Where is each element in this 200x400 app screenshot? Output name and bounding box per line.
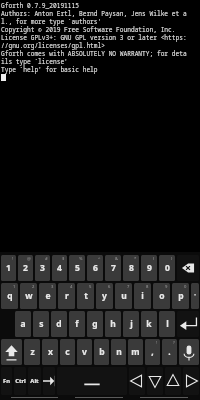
button[interactable]: v — [77, 339, 92, 365]
button[interactable]: 4 — [52, 255, 67, 281]
button[interactable]: p — [172, 283, 189, 309]
staticText: h — [110, 318, 116, 330]
staticText: ! — [156, 340, 158, 346]
staticText: License GPLv3+: GNU GPL version 3 or lat… — [1, 33, 187, 41]
button[interactable]: r — [58, 283, 75, 309]
staticText: @ — [27, 256, 31, 262]
staticText: i — [141, 290, 144, 302]
button[interactable]: Alt — [28, 367, 41, 395]
button[interactable]: 0 — [159, 255, 175, 281]
staticText: 6 — [108, 284, 111, 290]
button[interactable]: Space — [57, 367, 127, 395]
button[interactable]: h — [105, 311, 121, 337]
button[interactable]: Fn — [1, 367, 12, 395]
button[interactable]: i — [134, 283, 151, 309]
button[interactable]: e — [39, 283, 56, 309]
staticText: w — [25, 290, 33, 302]
staticText: s — [39, 318, 44, 330]
staticText: u — [121, 290, 127, 302]
staticText: z — [30, 346, 35, 358]
button[interactable]: Down — [147, 367, 163, 395]
staticText: y — [102, 290, 107, 302]
staticText: 4 — [70, 284, 73, 290]
staticText: ' — [194, 292, 196, 300]
button[interactable]: z — [24, 339, 40, 365]
button[interactable]: q — [1, 283, 18, 309]
staticText: Ctrl — [15, 377, 26, 385]
button[interactable]: f — [69, 311, 85, 337]
button[interactable]: Up — [165, 367, 181, 395]
button[interactable]: Shift — [1, 339, 22, 365]
button[interactable]: d — [51, 311, 67, 337]
staticText: q — [7, 290, 13, 302]
button[interactable]: 8 — [123, 255, 139, 281]
button[interactable]: 1 — [1, 255, 16, 281]
button[interactable]: , — [145, 339, 160, 365]
button[interactable]: a — [15, 311, 31, 337]
button[interactable]: c — [60, 339, 75, 365]
button[interactable]: n — [111, 339, 126, 365]
button[interactable]: 5 — [69, 255, 85, 281]
staticText: Copyright © 2019 Free Software Foundatio… — [1, 25, 176, 33]
staticText: ^ — [98, 256, 101, 262]
staticText: 7 — [111, 262, 116, 274]
staticText: n — [116, 346, 122, 358]
button[interactable]: s — [33, 311, 49, 337]
staticText: Authors: Anton Ertl, Bernd Paysan, Jens … — [1, 9, 187, 17]
button[interactable]: 6 — [87, 255, 103, 281]
staticText: 5 — [89, 284, 92, 290]
button[interactable]: 9 — [141, 255, 157, 281]
button[interactable]: x — [42, 339, 58, 365]
staticText: 2 — [32, 284, 35, 290]
button[interactable]: k — [141, 311, 157, 337]
staticText: o — [159, 290, 165, 302]
staticText: 8 — [146, 284, 149, 290]
button[interactable]: 2 — [18, 255, 33, 281]
button[interactable]: Left — [129, 367, 145, 395]
button[interactable]: Backspace — [177, 255, 199, 281]
button[interactable]: Ctrl — [14, 367, 26, 395]
staticText: 1 — [6, 262, 11, 274]
staticText: b — [99, 346, 105, 358]
button[interactable]: Right — [183, 367, 199, 395]
staticText: 8 — [129, 262, 134, 274]
button[interactable]: 3 — [35, 255, 50, 281]
staticText: 3 — [40, 262, 45, 274]
button[interactable]: o — [153, 283, 170, 309]
button[interactable]: Enter — [177, 311, 199, 337]
button[interactable]: j — [123, 311, 139, 337]
button[interactable]: Tab — [43, 367, 55, 395]
button[interactable]: m — [128, 339, 143, 365]
button[interactable]: u — [115, 283, 132, 309]
staticText: 3 — [51, 284, 54, 290]
staticText: 0 — [165, 262, 170, 274]
staticText: x — [48, 346, 53, 358]
button[interactable]: w — [20, 283, 37, 309]
staticText: Fn — [3, 377, 10, 385]
staticText: t — [84, 290, 88, 302]
button[interactable]: ' — [191, 283, 199, 309]
staticText: 0 — [184, 284, 187, 290]
button[interactable]: l — [159, 311, 175, 337]
staticText: ) — [171, 256, 173, 262]
staticText: $ — [62, 256, 65, 262]
staticText: r — [65, 290, 69, 302]
staticText: * — [134, 256, 137, 262]
staticText: 1 — [13, 284, 16, 290]
staticText: j — [130, 318, 133, 330]
button[interactable]: . — [162, 339, 177, 365]
button[interactable]: b — [94, 339, 109, 365]
staticText: 6 — [93, 262, 98, 274]
staticText: 7 — [127, 284, 130, 290]
button[interactable]: g — [87, 311, 103, 337]
staticText: 9 — [165, 284, 168, 290]
button[interactable]: Voice input — [179, 339, 199, 365]
staticText: 2 — [23, 262, 28, 274]
staticText: a — [20, 318, 26, 330]
button[interactable]: y — [96, 283, 113, 309]
button[interactable]: t — [77, 283, 94, 309]
staticText: ( — [153, 256, 155, 262]
staticText: l., for more type `authors' — [1, 17, 102, 25]
staticText: ils type `license' — [1, 57, 68, 65]
button[interactable]: 7 — [105, 255, 121, 281]
